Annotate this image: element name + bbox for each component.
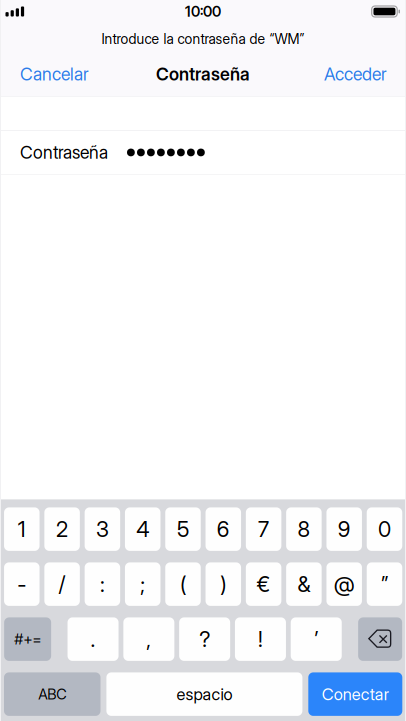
button[interactable]: 2 [44, 507, 80, 551]
staticText: 10:00 [185, 3, 221, 20]
button[interactable]: 5 [165, 507, 201, 551]
staticText: #+= [14, 630, 41, 648]
button[interactable]: & [286, 562, 322, 606]
button[interactable]: @ [326, 562, 362, 606]
button[interactable]: Borrar [358, 617, 402, 661]
button[interactable]: / [44, 562, 80, 606]
button[interactable]: 6 [206, 507, 241, 551]
staticText: Conectar [322, 684, 389, 704]
button[interactable]: Conectar [308, 672, 402, 716]
staticText: 9 [338, 516, 351, 542]
button[interactable]: ABC [4, 672, 100, 716]
button[interactable]: ’ [291, 617, 342, 661]
button[interactable]: : [85, 562, 120, 606]
button[interactable]: 0 [367, 507, 402, 551]
button[interactable]: ) [206, 562, 241, 606]
staticText: € [257, 571, 271, 597]
staticText: ? [199, 626, 210, 652]
staticText: 7 [258, 516, 269, 542]
staticText: 2 [56, 516, 68, 542]
staticText: 6 [217, 516, 230, 542]
staticText: 1 [18, 516, 26, 542]
staticText: espacio [176, 684, 232, 704]
staticText: : [100, 571, 105, 597]
button[interactable]: 9 [326, 507, 362, 551]
button[interactable]: ” [367, 562, 402, 606]
staticText: ” [381, 571, 388, 597]
staticText: , [146, 626, 151, 652]
staticText: Contraseña [20, 142, 108, 163]
staticText: @ [334, 571, 355, 597]
button[interactable]: ? [179, 617, 230, 661]
staticText: 8 [297, 516, 310, 542]
staticText: Introduce la contraseña de “WM” [101, 30, 304, 47]
staticText: ABC [38, 685, 66, 703]
button[interactable]: ! [235, 617, 286, 661]
staticText: ) [220, 571, 226, 597]
staticText: ( [180, 571, 186, 597]
button[interactable]: - [4, 562, 40, 606]
button[interactable]: , [123, 617, 174, 661]
staticText: ! [258, 626, 263, 652]
button[interactable]: ; [125, 562, 160, 606]
staticText: - [17, 571, 26, 597]
button[interactable]: #+= [4, 617, 51, 661]
button[interactable]: 8 [286, 507, 322, 551]
button[interactable]: Acceder [305, 52, 406, 96]
button[interactable]: 4 [125, 507, 160, 551]
button[interactable]: . [68, 617, 119, 661]
button[interactable]: 3 [85, 507, 120, 551]
staticText: Acceder [324, 63, 387, 85]
button[interactable]: espacio [106, 672, 302, 716]
staticText: Cancelar [20, 63, 89, 85]
staticText: 5 [177, 516, 189, 542]
staticText: / [59, 571, 66, 597]
staticText: 3 [96, 516, 109, 542]
staticText: ; [140, 571, 145, 597]
button[interactable]: 1 [4, 507, 40, 551]
staticText: & [297, 571, 310, 597]
button[interactable]: € [246, 562, 281, 606]
button[interactable]: 7 [246, 507, 281, 551]
button[interactable]: Cancelar [0, 52, 109, 96]
staticText: Contraseña [156, 63, 250, 85]
staticText: . [91, 626, 96, 652]
button[interactable]: ( [165, 562, 201, 606]
staticText: 4 [136, 516, 149, 542]
staticText: 0 [378, 516, 391, 542]
staticText: ’ [314, 626, 318, 652]
